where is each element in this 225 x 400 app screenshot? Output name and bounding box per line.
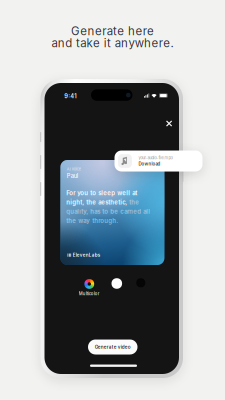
staticText: night, the aesthetic, <box>66 199 127 206</box>
staticText: Generate here <box>71 24 154 38</box>
button[interactable]: your-audio-file.mp3 <box>114 150 202 171</box>
staticText: Generate video <box>95 344 131 350</box>
staticText: and take it anywhere. <box>51 36 173 50</box>
button[interactable]: Generate video <box>88 339 137 354</box>
staticText: 9:41 <box>64 93 76 99</box>
button[interactable]: White <box>105 278 129 297</box>
button[interactable]: Close <box>162 116 176 130</box>
staticText: For you to sleep well at <box>66 189 137 197</box>
button[interactable]: Black <box>129 278 153 297</box>
staticText: the <box>127 199 139 206</box>
staticText: your-audio-file.mp3 <box>138 155 172 160</box>
staticText: the way through. <box>66 217 118 224</box>
button[interactable]: Multicolor <box>74 278 105 297</box>
staticText: Download <box>138 161 160 167</box>
staticText: Paul <box>67 172 78 179</box>
staticText: Multicolor <box>79 291 100 296</box>
staticText: ElevenLabs <box>73 252 100 258</box>
staticText: quality, has to be carried all <box>66 208 150 215</box>
staticText: AI voice <box>67 167 81 171</box>
